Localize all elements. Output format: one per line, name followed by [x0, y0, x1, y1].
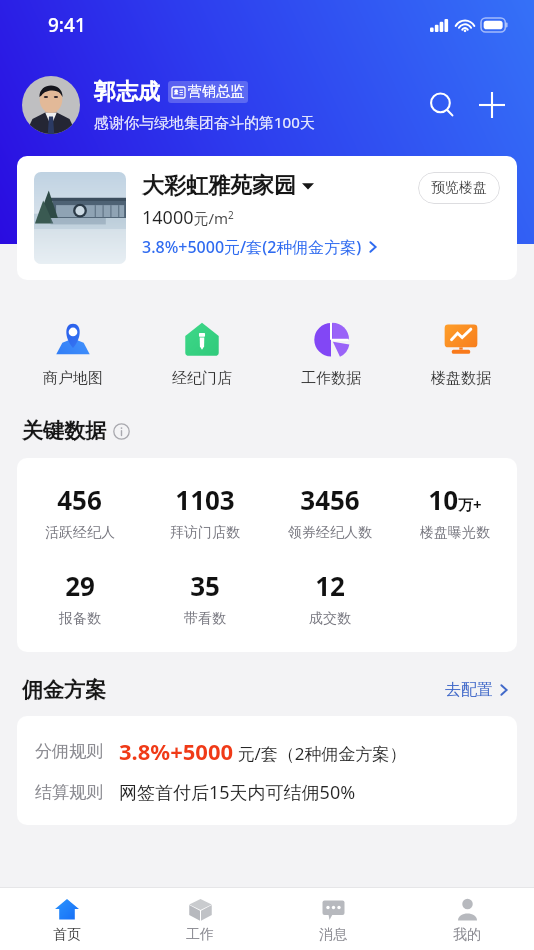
- staticText: 工作数据: [301, 369, 361, 388]
- button[interactable]: 去配置: [441, 676, 514, 704]
- staticText: 3.8%+5000元/套(2种佣金方案): [142, 236, 362, 258]
- staticText: 我的: [453, 926, 481, 944]
- staticText: 工作: [186, 926, 214, 944]
- staticText: 大彩虹雅苑家园: [142, 172, 296, 200]
- staticText: 结算规则: [35, 782, 103, 803]
- button[interactable]: 经纪门店: [137, 312, 266, 394]
- button[interactable]: 楼盘数据: [396, 312, 526, 394]
- staticText: 29: [65, 568, 95, 603]
- button[interactable]: 首页: [0, 888, 133, 950]
- button[interactable]: 10万+: [392, 482, 517, 542]
- staticText: 带看数: [184, 610, 226, 628]
- button[interactable]: Search: [422, 85, 462, 125]
- staticText: 营销总监: [188, 83, 244, 101]
- staticText: 领券经纪人数: [288, 524, 372, 542]
- staticText: 9:41: [48, 12, 86, 38]
- staticText: 去配置: [445, 680, 493, 700]
- staticText: 活跃经纪人: [45, 524, 115, 542]
- staticText: 商户地图: [43, 369, 103, 388]
- button[interactable]: 大彩虹雅苑家园: [17, 156, 517, 280]
- staticText: 楼盘数据: [431, 369, 491, 388]
- staticText: 1103: [175, 482, 235, 517]
- button[interactable]: 456: [17, 482, 142, 542]
- staticText: 楼盘曝光数: [420, 524, 490, 542]
- button[interactable]: 商户地图: [8, 312, 137, 394]
- staticText: 预览楼盘: [431, 179, 487, 197]
- staticText: 3456: [300, 482, 360, 517]
- button[interactable]: 29: [17, 568, 142, 628]
- staticText: 郭志成: [94, 78, 160, 106]
- staticText: 报备数: [59, 610, 101, 628]
- staticText: 消息: [319, 926, 347, 944]
- button[interactable]: 3456: [267, 482, 392, 542]
- staticText: 10万+: [428, 482, 482, 517]
- button[interactable]: Add: [472, 85, 512, 125]
- staticText: 成交数: [309, 610, 351, 628]
- staticText: 35: [190, 568, 220, 603]
- button[interactable]: 分佣规则: [17, 716, 517, 825]
- staticText: 3.8%+5000 元/套（2种佣金方案）: [119, 736, 407, 766]
- button[interactable]: 35: [142, 568, 267, 628]
- staticText: 分佣规则: [35, 741, 103, 762]
- staticText: 12: [315, 568, 345, 603]
- staticText: 456: [57, 482, 102, 517]
- staticText: 首页: [53, 926, 81, 944]
- button[interactable]: 我的: [400, 888, 534, 950]
- button[interactable]: 预览楼盘: [418, 172, 500, 204]
- staticText: 网签首付后15天内可结佣50%: [119, 780, 356, 805]
- staticText: 关键数据: [22, 418, 106, 444]
- button[interactable]: 工作数据: [266, 312, 396, 394]
- button[interactable]: 1103: [142, 482, 267, 542]
- button[interactable]: 12: [267, 568, 392, 628]
- staticText: 14000元/m2: [142, 205, 234, 230]
- staticText: 佣金方案: [22, 677, 106, 703]
- staticText: 经纪门店: [172, 369, 232, 388]
- staticText: 感谢你与绿地集团奋斗的第100天: [94, 112, 315, 132]
- button[interactable]: 消息: [266, 888, 400, 950]
- button[interactable]: 工作: [133, 888, 266, 950]
- staticText: 拜访门店数: [170, 524, 240, 542]
